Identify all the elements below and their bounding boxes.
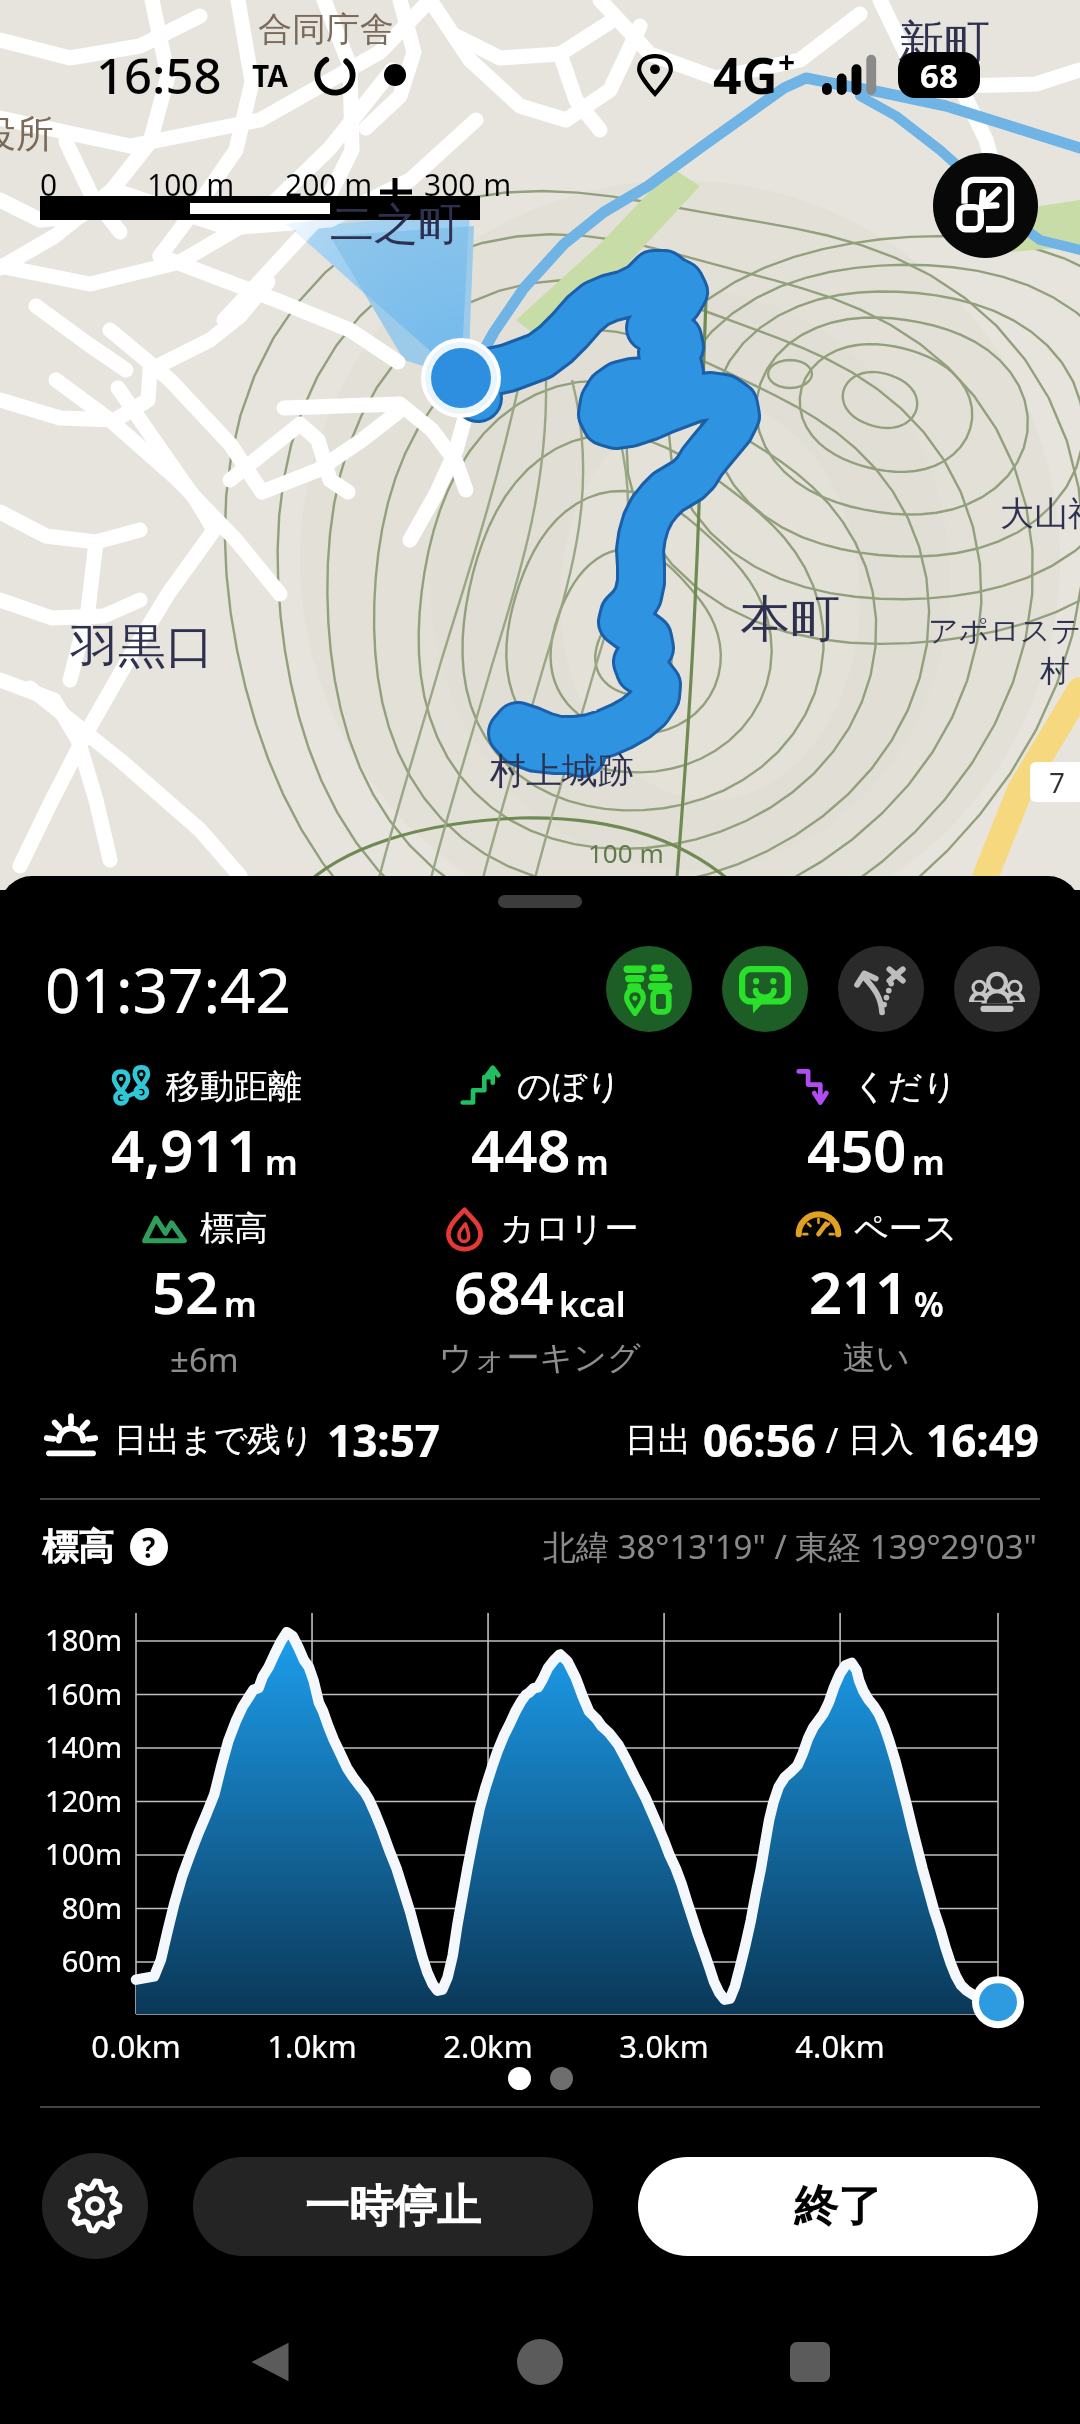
staticText: 160m (10, 1674, 122, 1713)
staticText: m (265, 1139, 298, 1185)
staticText: 1.0km (232, 2025, 392, 2067)
staticText: 140m (10, 1727, 122, 1766)
button[interactable]: Group (954, 946, 1040, 1032)
staticText: 3.0km (584, 2025, 744, 2067)
staticText: 速い (843, 1337, 910, 1379)
staticText: 100 m (588, 835, 664, 870)
staticText: 16:49 (926, 1410, 1040, 1470)
staticText: ±6m (170, 1337, 239, 1382)
button[interactable]: 終了 (638, 2157, 1038, 2256)
staticText: ? (142, 1528, 156, 1566)
button[interactable]: Recents (675, 2300, 945, 2424)
staticText: m (224, 1281, 257, 1327)
staticText: kcal (559, 1281, 626, 1327)
staticText: 120m (10, 1781, 122, 1820)
staticText: 移動距離 (166, 1065, 302, 1108)
staticText: 01:37:42 (45, 947, 292, 1031)
staticText: 100m (10, 1834, 122, 1873)
staticText: 日出 (625, 1419, 691, 1461)
staticText: のぼり (517, 1065, 622, 1108)
staticText: 日出まで残り (114, 1419, 315, 1461)
staticText: 4,911 (111, 1110, 260, 1189)
staticText: 標高 (42, 1524, 114, 1569)
staticText: 13:57 (327, 1410, 441, 1470)
staticText: 一時停止 (305, 2179, 481, 2234)
staticText: ウォーキング (439, 1337, 641, 1379)
staticText: 68 (920, 53, 958, 98)
button[interactable]: Home (405, 2300, 675, 2424)
staticText: 60m (10, 1941, 122, 1980)
staticText: 大山祇 (1000, 492, 1080, 535)
staticText: m (576, 1139, 609, 1185)
button[interactable]: 一時停止 (193, 2157, 593, 2256)
staticText: 80m (10, 1888, 122, 1927)
staticText: 300 m (424, 164, 512, 205)
button[interactable]: Collapse map (933, 153, 1038, 258)
staticText: 211 (809, 1252, 909, 1331)
staticText: 合同庁舎 (258, 8, 394, 51)
staticText: 北緯 38°13'19" / 東経 139°29'03" (543, 1524, 1038, 1569)
button[interactable]: Route off (838, 946, 924, 1032)
staticText: / (817, 1417, 848, 1463)
staticText: 4G (713, 41, 778, 109)
staticText: 羽黒口 (70, 617, 214, 677)
staticText: 06:56 (703, 1410, 817, 1470)
staticText: % (914, 1281, 944, 1327)
staticText: 役所 (0, 110, 54, 158)
staticText: 448 (471, 1110, 571, 1189)
staticText: 二之町 (330, 197, 462, 252)
staticText: 本町 (740, 588, 840, 651)
staticText: 村 (1040, 652, 1070, 690)
staticText: 52 (152, 1252, 219, 1331)
staticText: 684 (454, 1252, 554, 1331)
staticText: アポロステー (928, 612, 1080, 650)
staticText: 100 m (147, 164, 235, 205)
staticText: 7 (1049, 763, 1066, 801)
button[interactable]: Chat (722, 946, 808, 1032)
staticText: 村上城跡 (490, 748, 634, 793)
staticText: 日入 (848, 1419, 914, 1461)
staticText: 終了 (794, 2179, 882, 2234)
staticText: 標高 (200, 1207, 268, 1250)
button[interactable]: Waypoints (606, 946, 692, 1032)
staticText: 0.0km (56, 2025, 216, 2067)
button[interactable]: Settings (42, 2153, 148, 2259)
staticText: TA (252, 55, 288, 96)
staticText: ペース (854, 1207, 958, 1250)
staticText: m (912, 1139, 945, 1185)
staticText: + (778, 41, 796, 82)
staticText: 4.0km (760, 2025, 920, 2067)
staticText: カロリー (500, 1207, 639, 1250)
staticText: 2.0km (408, 2025, 568, 2067)
staticText: くだり (853, 1065, 958, 1108)
staticText: 16:58 (96, 42, 222, 109)
staticText: 450 (807, 1110, 907, 1189)
staticText: 新町 (898, 14, 990, 72)
staticText: 0 (40, 164, 58, 205)
staticText: 180m (10, 1620, 122, 1659)
button[interactable]: Back (135, 2300, 405, 2424)
button[interactable]: Help (130, 1528, 168, 1566)
staticText: 200 m (285, 164, 373, 205)
